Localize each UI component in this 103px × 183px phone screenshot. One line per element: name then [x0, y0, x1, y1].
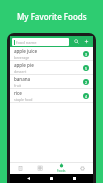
button[interactable]: apple juice [10, 47, 93, 61]
staticText: apple juice [14, 48, 38, 54]
button[interactable]: Back [24, 174, 33, 183]
button[interactable]: food name [12, 38, 69, 46]
staticText: rice [14, 90, 22, 96]
staticText: food name [16, 40, 37, 45]
staticText: Foods [57, 169, 66, 173]
staticText: beverage [14, 55, 30, 60]
button[interactable]: Settings [72, 162, 93, 174]
button[interactable]: Dashboard [30, 162, 51, 174]
button[interactable]: Foods [51, 162, 72, 174]
button[interactable]: Search [72, 37, 81, 46]
staticText: 3 [85, 52, 88, 57]
button[interactable]: Add food [82, 37, 91, 46]
staticText: dessert [14, 69, 27, 74]
staticText: apple pie [14, 62, 34, 68]
button[interactable]: banana [10, 75, 93, 89]
button[interactable]: Recents [70, 174, 79, 183]
staticText: fruit [14, 83, 21, 88]
staticText: 4 [85, 94, 88, 99]
staticText: 5 [85, 66, 88, 71]
button[interactable]: Home [47, 174, 56, 183]
button[interactable]: apple pie [10, 61, 93, 75]
staticText: banana [14, 76, 31, 82]
button[interactable]: rice [10, 89, 93, 103]
staticText: 2 [85, 80, 88, 85]
staticText: staple food [14, 97, 33, 102]
staticText: My Favorite Foods [17, 11, 87, 22]
button[interactable]: Notes [10, 162, 30, 174]
